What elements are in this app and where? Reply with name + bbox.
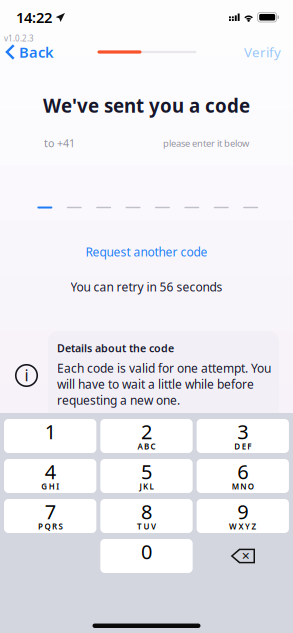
staticText: MNO (232, 481, 254, 492)
staticText: please enter it below (163, 137, 249, 149)
button[interactable]: 4 (4, 459, 96, 493)
staticText: ✕ (241, 550, 250, 562)
staticText: ABC (137, 441, 155, 452)
button[interactable]: Verify (232, 38, 293, 66)
button[interactable]: 6 (197, 459, 289, 493)
staticText: Details about the code (57, 341, 174, 355)
button[interactable]: 0 (100, 539, 193, 573)
staticText: JKL (139, 481, 153, 492)
button[interactable]: 9 (197, 499, 289, 533)
staticText: Request another code (85, 244, 207, 260)
staticText: GHI (41, 481, 59, 492)
button[interactable]: 2 (100, 419, 193, 453)
staticText: 1 (45, 418, 56, 445)
staticText: 3 (237, 418, 248, 445)
staticText: WXYZ (229, 521, 257, 532)
staticText: 0 (141, 538, 152, 565)
staticText: PQRS (38, 521, 62, 532)
button[interactable]: Back (0, 38, 62, 66)
staticText: 7 (45, 498, 56, 525)
staticText: We've sent you a code (43, 93, 250, 118)
staticText: 4 (45, 458, 56, 485)
staticText: 9 (237, 498, 248, 525)
staticText: 2 (141, 418, 152, 445)
staticText: i (24, 364, 28, 386)
staticText: Each code is valid for one attempt. You … (57, 360, 271, 408)
staticText: Verify (244, 43, 281, 61)
staticText: Back (19, 42, 54, 62)
button[interactable]: 3 (197, 419, 289, 453)
staticText: 6 (237, 458, 248, 485)
staticText: DEF (234, 441, 251, 452)
staticText: You can retry in 56 seconds (70, 279, 222, 295)
button[interactable]: Request another code (75, 240, 217, 264)
staticText: 8 (141, 498, 152, 525)
button[interactable]: 5 (100, 459, 193, 493)
staticText: 14:22 (16, 7, 52, 27)
staticText: v1.0.2.3 (4, 33, 34, 44)
staticText: TUV (137, 521, 156, 532)
button[interactable]: Delete (197, 539, 289, 573)
button[interactable]: 8 (100, 499, 193, 533)
staticText: 5 (141, 458, 152, 485)
button[interactable]: 1 (4, 419, 96, 453)
button[interactable]: 7 (4, 499, 96, 533)
staticText: to +41 (44, 136, 75, 150)
